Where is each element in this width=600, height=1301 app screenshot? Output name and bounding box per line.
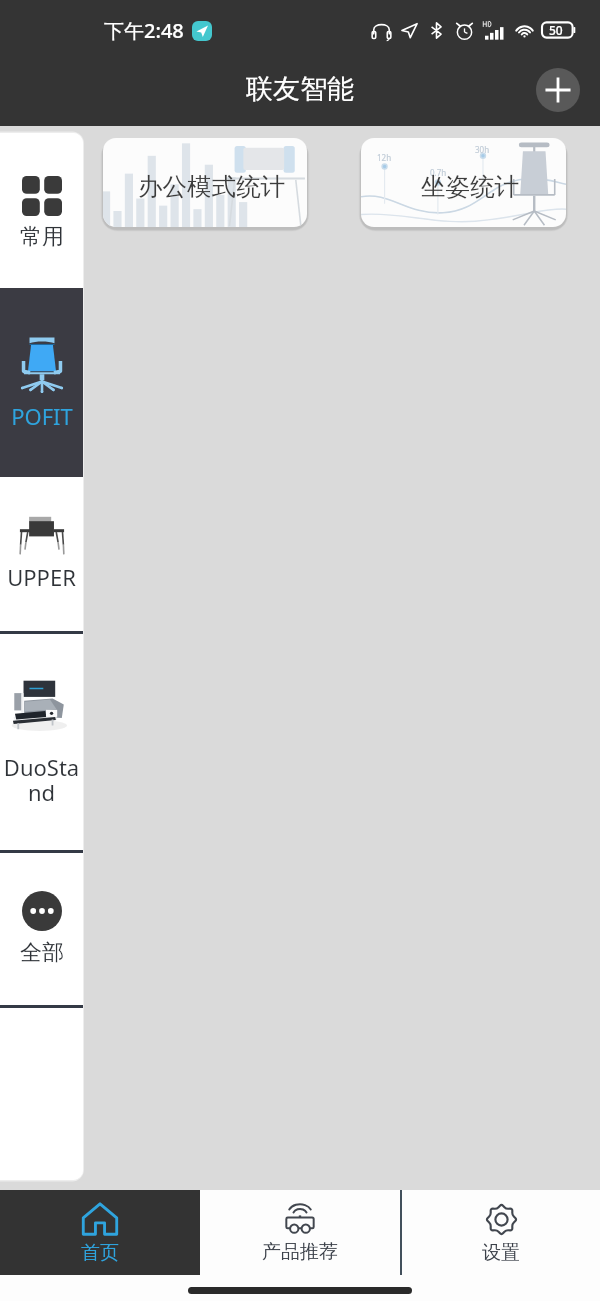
button[interactable]: POFIT bbox=[0, 288, 83, 477]
button[interactable]: 全部 bbox=[0, 853, 83, 1005]
staticText: 设置 bbox=[482, 1241, 520, 1265]
button[interactable]: UPPER bbox=[0, 477, 83, 631]
staticText: 50 bbox=[549, 22, 563, 38]
staticText: 产品推荐 bbox=[262, 1240, 338, 1264]
staticText: UPPER bbox=[7, 562, 76, 592]
button[interactable]: DuoStand bbox=[0, 634, 83, 850]
button[interactable]: 常用 bbox=[0, 133, 83, 288]
staticText: 全部 bbox=[20, 939, 64, 967]
button[interactable]: 首页 bbox=[0, 1190, 200, 1275]
button[interactable]: 设置 bbox=[402, 1190, 600, 1275]
staticText: 联友智能 bbox=[246, 72, 354, 106]
staticText: 常用 bbox=[20, 223, 64, 251]
staticText: 下午2:48 bbox=[104, 17, 184, 44]
staticText: 坐姿统计 bbox=[421, 171, 519, 202]
staticText: 0.7h bbox=[430, 167, 447, 178]
button[interactable]: 办公模式统计 bbox=[103, 138, 307, 227]
staticText: POFIT bbox=[11, 401, 73, 431]
staticText: 12h bbox=[377, 152, 392, 163]
button[interactable]: Add device bbox=[536, 68, 580, 112]
button[interactable]: 12h bbox=[361, 138, 566, 227]
staticText: 30h bbox=[475, 144, 490, 155]
staticText: 首页 bbox=[81, 1241, 119, 1265]
staticText: DuoStand bbox=[0, 752, 83, 807]
button[interactable]: 产品推荐 bbox=[200, 1190, 400, 1275]
staticText: 办公模式统计 bbox=[138, 171, 285, 202]
